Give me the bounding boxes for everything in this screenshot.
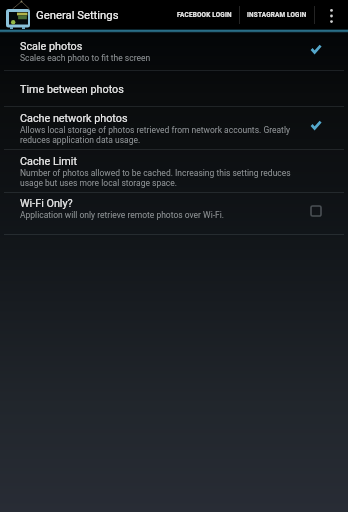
staticText: Cache network photos [20, 112, 128, 125]
staticText: Allows local storage of photos retrieved… [20, 125, 290, 135]
staticText: Cache Limit [20, 155, 77, 168]
staticText: General Settings [36, 9, 119, 22]
button[interactable]: Cache network photos [306, 115, 326, 135]
button[interactable]: Cache Limit [0, 150, 348, 192]
button[interactable]: INSTAGRAM LOGIN [240, 0, 314, 30]
staticText: Time between photos [20, 83, 124, 96]
staticText: FACEBOOK LOGIN [177, 11, 232, 19]
button[interactable]: Wi-Fi Only? [0, 193, 348, 234]
button[interactable]: Scale photos [0, 33, 348, 70]
button[interactable]: Time between photos [0, 71, 348, 106]
staticText: usage but uses more local storage space. [20, 178, 178, 188]
staticText: Scale photos [20, 40, 83, 53]
button[interactable]: Wi-Fi Only? [306, 201, 326, 221]
button[interactable]: More options [315, 0, 348, 30]
staticText: Scales each photo to fit the screen [20, 53, 151, 63]
staticText: Application will only retrieve remote ph… [20, 210, 225, 220]
staticText: INSTAGRAM LOGIN [247, 11, 307, 19]
staticText: Number of photos allowed to be cached. I… [20, 168, 304, 178]
staticText: reduces application data usage. [20, 135, 141, 145]
button[interactable]: Scale photos [306, 39, 326, 59]
button[interactable]: Cache network photos [0, 107, 348, 149]
staticText: Wi-Fi Only? [20, 197, 73, 210]
button[interactable]: FACEBOOK LOGIN [170, 0, 239, 30]
